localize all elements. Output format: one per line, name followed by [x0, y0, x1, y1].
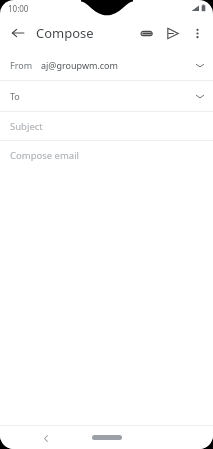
- button[interactable]: Subject: [0, 112, 213, 140]
- staticText: 10:00: [8, 3, 29, 14]
- staticText: Compose email: [10, 149, 80, 162]
- button[interactable]: More options: [185, 21, 209, 45]
- button[interactable]: Home: [92, 435, 122, 440]
- button[interactable]: Compose email: [0, 141, 213, 169]
- button[interactable]: Back: [36, 428, 56, 448]
- staticText: From: [10, 59, 33, 71]
- staticText: To: [10, 90, 20, 102]
- button[interactable]: Send: [160, 21, 184, 45]
- staticText: Compose: [36, 24, 94, 42]
- staticText: aj@groupwm.com: [41, 59, 118, 71]
- button[interactable]: Attach file: [134, 21, 158, 45]
- button[interactable]: From: [0, 50, 213, 80]
- button[interactable]: To: [0, 81, 213, 111]
- staticText: Subject: [10, 120, 43, 133]
- button[interactable]: Back: [6, 21, 30, 45]
